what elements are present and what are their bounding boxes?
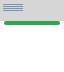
button[interactable] xyxy=(4,21,60,25)
